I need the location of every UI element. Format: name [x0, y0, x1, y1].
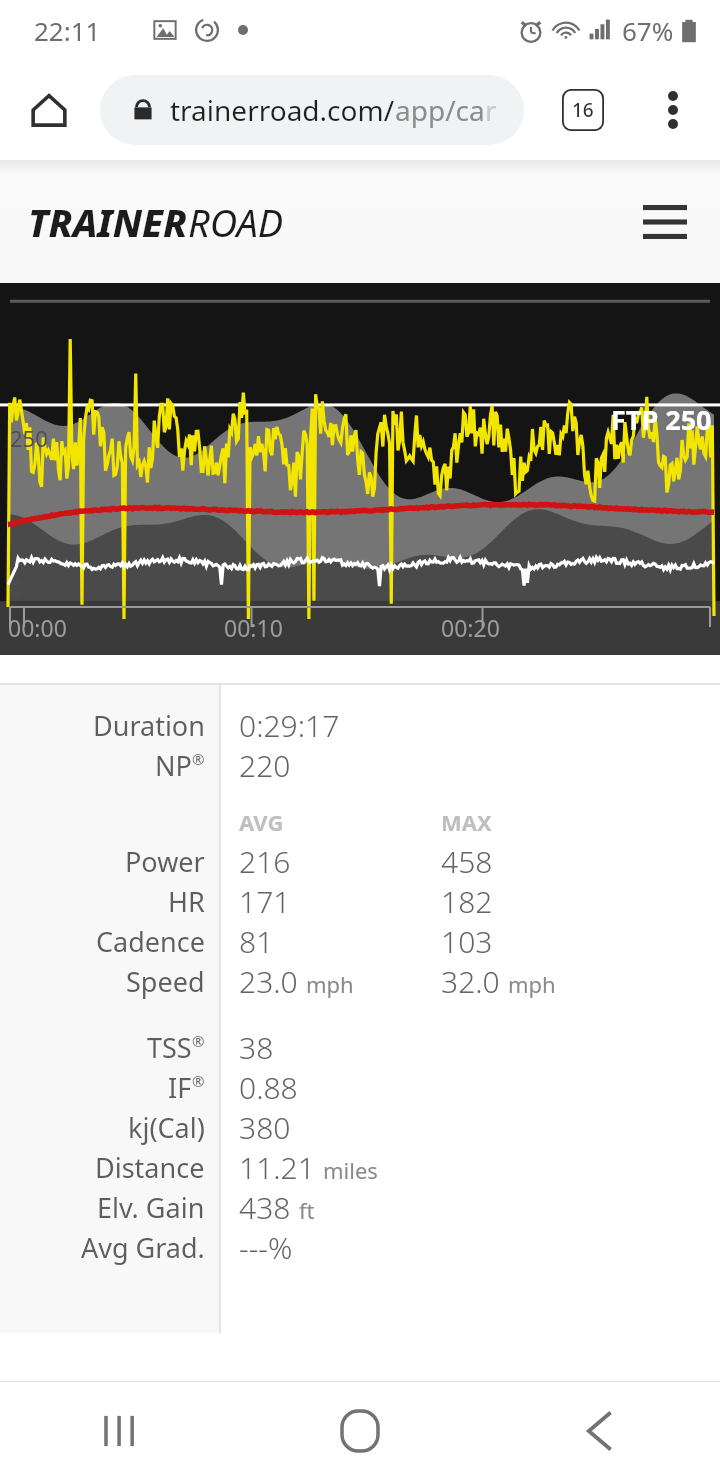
staticText: 438 — [239, 1187, 291, 1227]
button[interactable]: TRAINER — [28, 196, 284, 248]
staticText: 11.21 — [239, 1147, 315, 1187]
button[interactable]: More options — [642, 79, 704, 141]
staticText: 38 — [239, 1027, 274, 1067]
staticText: HR — [168, 883, 205, 920]
staticText: IF — [168, 1069, 192, 1106]
button[interactable]: kj(Cal) — [0, 1107, 720, 1147]
staticText: TRAINER — [28, 196, 188, 248]
staticText: 250 — [10, 423, 48, 453]
button[interactable]: HR — [0, 881, 720, 921]
staticText: Distance — [95, 1149, 205, 1186]
staticText: miles — [323, 1155, 378, 1185]
staticText: 0.88 — [239, 1067, 298, 1107]
button[interactable]: Speed — [0, 961, 720, 1001]
button[interactable]: IF — [0, 1067, 720, 1107]
button[interactable]: trainerroad.com/ — [100, 75, 524, 145]
staticText: mph — [306, 969, 354, 999]
staticText: 00:00 — [8, 612, 67, 643]
button[interactable]: TSS — [0, 1027, 720, 1067]
staticText: 220 — [239, 745, 291, 785]
staticText: FTP 250 — [611, 401, 712, 438]
button[interactable]: Recents — [0, 1382, 240, 1480]
staticText: NP — [155, 747, 192, 784]
staticText: ® — [192, 1031, 205, 1051]
staticText: 16 — [572, 97, 594, 123]
staticText: TSS — [147, 1029, 192, 1066]
button[interactable]: Home — [240, 1382, 480, 1480]
staticText: trainerroad.com/ — [170, 91, 395, 129]
staticText: 23.0 — [239, 961, 298, 1001]
staticText: Elv. Gain — [97, 1189, 205, 1226]
staticText: 216 — [239, 841, 291, 881]
staticText: 67% — [622, 13, 674, 48]
staticText: Cadence — [96, 923, 205, 960]
button[interactable]: NP — [0, 745, 720, 785]
staticText: Duration — [93, 707, 205, 744]
button[interactable]: Avg Grad. — [0, 1227, 720, 1267]
staticText: 103 — [441, 921, 493, 961]
button[interactable]: Power — [0, 841, 720, 881]
staticText: Speed — [126, 963, 205, 1000]
staticText: ® — [192, 749, 205, 769]
staticText: Avg Grad. — [81, 1229, 205, 1266]
staticText: 171 — [239, 881, 291, 921]
staticText: Power — [125, 843, 205, 880]
staticText: 0 — [10, 572, 23, 602]
staticText: 0:29:17 — [239, 705, 340, 745]
staticText: 182 — [441, 881, 493, 921]
button[interactable]: Duration — [0, 705, 720, 745]
staticText: r — [485, 91, 497, 129]
button[interactable]: Distance — [0, 1147, 720, 1187]
staticText: 458 — [441, 841, 493, 881]
staticText: ft — [299, 1195, 315, 1225]
staticText: 00:20 — [441, 612, 500, 643]
staticText: MAX — [441, 807, 492, 837]
button[interactable]: Menu — [632, 189, 698, 255]
button[interactable]: Tabs — [552, 79, 614, 141]
staticText: ® — [192, 1071, 205, 1091]
staticText: kj(Cal) — [128, 1109, 205, 1146]
button[interactable]: Elv. Gain — [0, 1187, 720, 1227]
staticText: app/ca — [395, 91, 485, 129]
staticText: AVG — [239, 807, 284, 837]
staticText: 22:11 — [34, 13, 101, 48]
button[interactable]: Cadence — [0, 921, 720, 961]
staticText: ROAD — [188, 196, 284, 248]
button[interactable]: Home — [18, 79, 80, 141]
staticText: 00:10 — [224, 612, 283, 643]
staticText: 380 — [239, 1107, 291, 1147]
staticText: ---% — [239, 1227, 293, 1267]
staticText: mph — [508, 969, 556, 999]
staticText: 81 — [239, 921, 274, 961]
staticText: 32.0 — [441, 961, 500, 1001]
button[interactable]: Back — [480, 1382, 720, 1480]
